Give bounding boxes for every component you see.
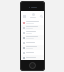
button[interactable] [21, 25, 44, 30]
button[interactable] [21, 35, 44, 40]
button[interactable] [21, 30, 44, 35]
button[interactable] [21, 50, 44, 55]
button[interactable] [21, 20, 44, 25]
button[interactable] [21, 55, 44, 60]
button[interactable]: Home [29, 62, 36, 69]
button[interactable] [21, 40, 44, 45]
button[interactable] [21, 45, 44, 50]
button[interactable]: Menu [22, 14, 26, 18]
button[interactable]: Search [39, 14, 43, 18]
